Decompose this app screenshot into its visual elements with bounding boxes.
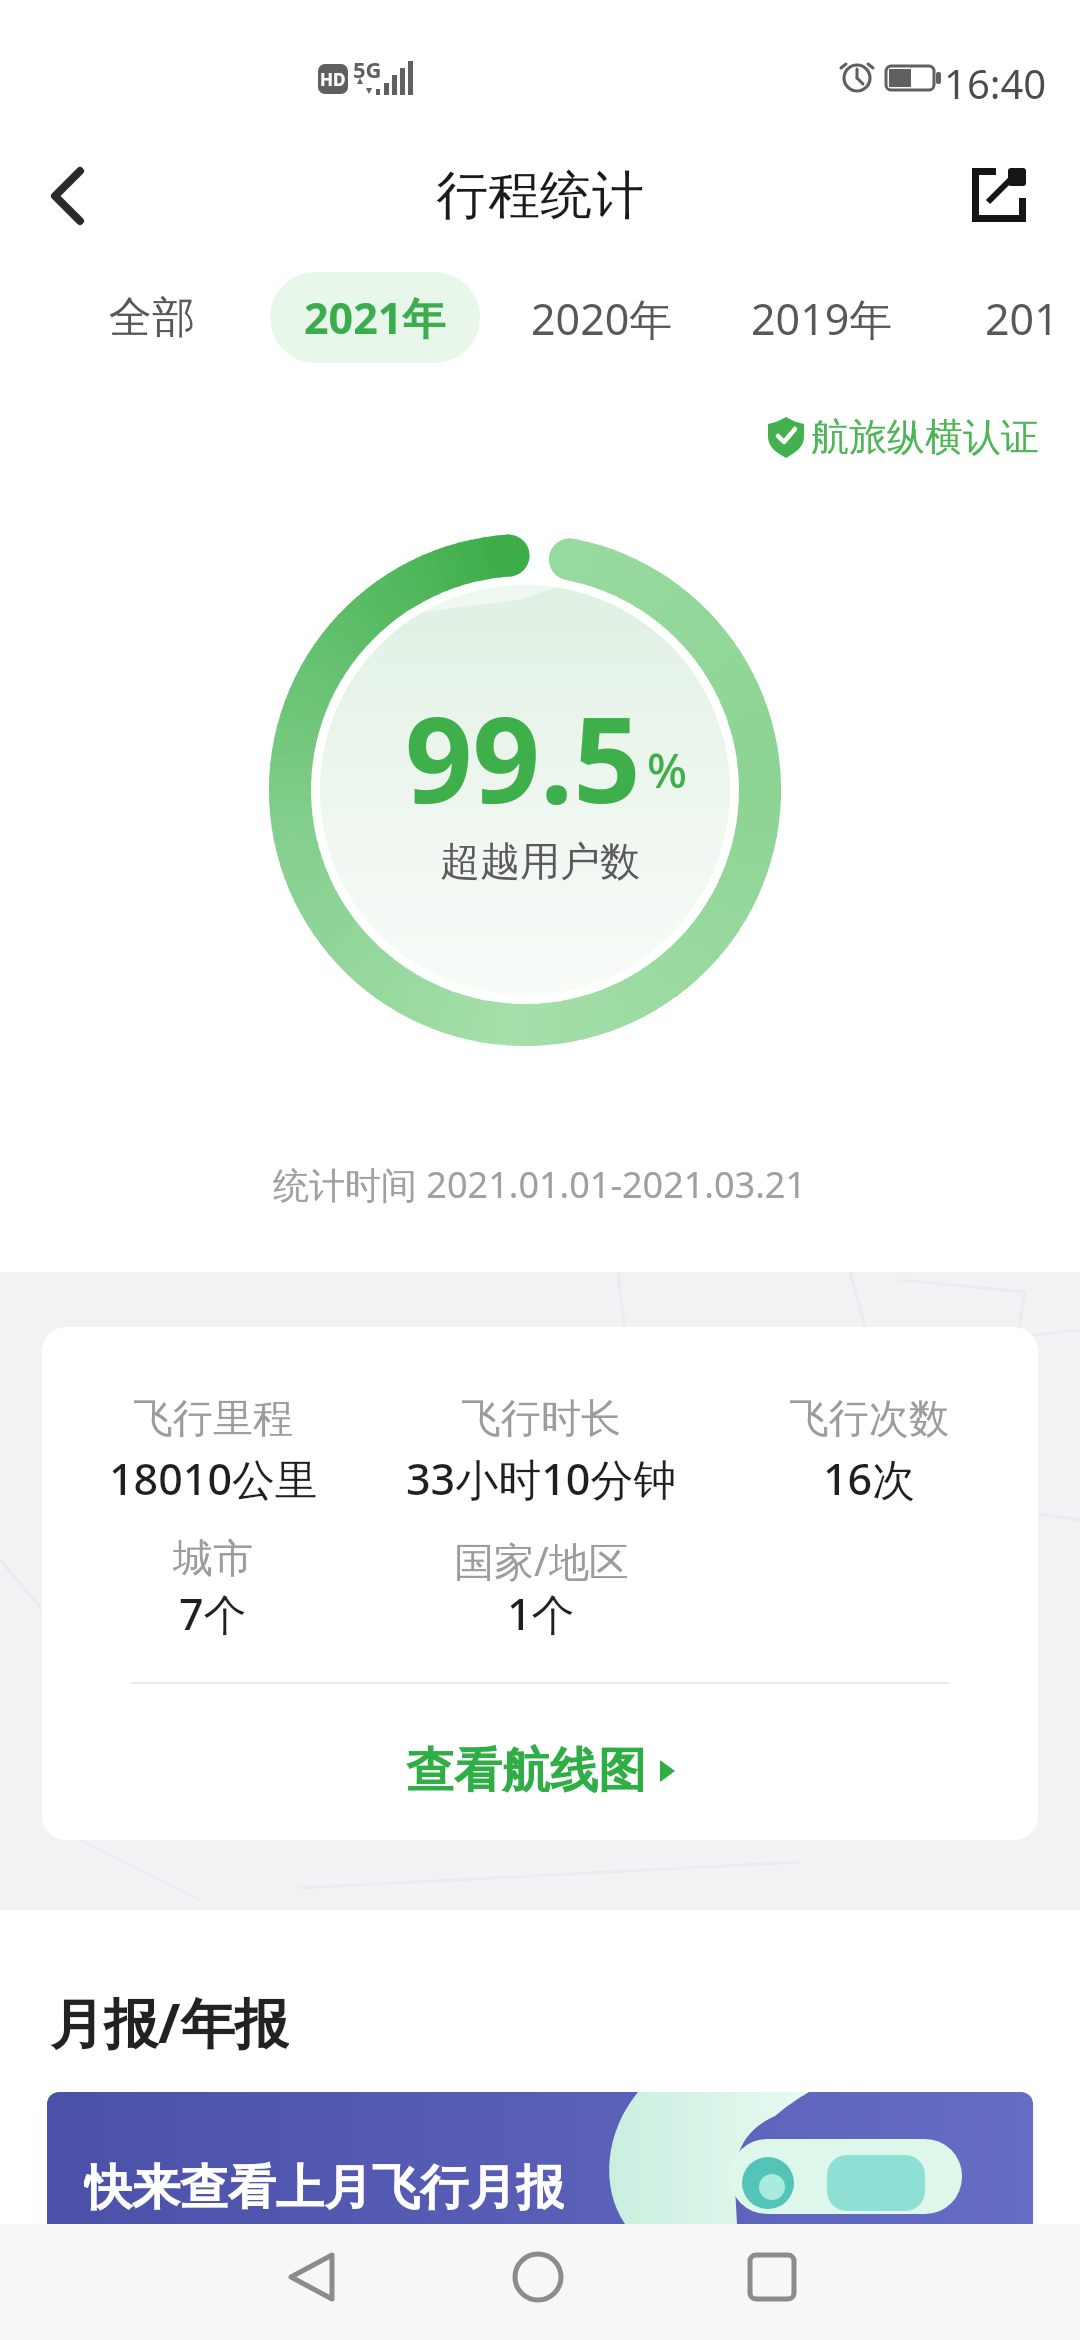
staticText: % <box>647 738 688 798</box>
button[interactable] <box>270 2237 350 2317</box>
staticText: 2020年 <box>531 289 673 348</box>
button[interactable] <box>498 2237 578 2317</box>
staticText: 行程统计 <box>436 163 644 229</box>
staticText: 18010公里 <box>109 1449 318 1505</box>
staticText: 16次 <box>823 1449 916 1505</box>
button[interactable]: 快来查看上月飞行月报 <box>47 2092 1033 2224</box>
staticText: 城市 <box>173 1533 253 1583</box>
staticText: 5G <box>353 54 382 80</box>
staticText: 全部 <box>109 291 195 345</box>
staticText: 快来查看上月飞行月报 <box>84 2158 564 2214</box>
staticText: HD <box>320 68 346 91</box>
staticText: 查看航线图 <box>406 1741 646 1801</box>
button[interactable]: 2018年 <box>985 283 1080 353</box>
button[interactable]: 2019年 <box>732 283 912 353</box>
staticText: 2019年 <box>751 289 893 348</box>
button[interactable] <box>950 150 1060 245</box>
staticText: 月报/年报 <box>50 1985 289 2051</box>
staticText: 飞行次数 <box>789 1393 949 1443</box>
staticText: 飞行里程 <box>133 1393 293 1443</box>
button[interactable]: 2021年 <box>270 272 480 363</box>
staticText: 统计时间 2021.01.01-2021.03.21 <box>273 1160 807 1209</box>
staticText: 7个 <box>179 1584 247 1640</box>
button[interactable]: 全部 <box>72 283 232 353</box>
staticText: 16:40 <box>944 56 1047 100</box>
staticText: 航旅纵横认证 <box>811 413 1039 459</box>
staticText: 2021年 <box>304 288 446 347</box>
staticText: 33小时10分钟 <box>406 1449 677 1505</box>
staticText: 99.5 <box>405 677 641 827</box>
button[interactable]: 2020年 <box>512 283 692 353</box>
button[interactable]: 航旅纵横认证 <box>810 413 1040 459</box>
staticText: 超越用户数 <box>440 836 640 886</box>
staticText: 飞行时长 <box>461 1393 621 1443</box>
staticText: 2018年 <box>985 289 1080 348</box>
button[interactable] <box>732 2237 812 2317</box>
button[interactable] <box>20 150 120 245</box>
staticText: 国家/地区 <box>454 1533 629 1583</box>
button[interactable]: 查看航线图 <box>391 1735 691 1807</box>
staticText: 1个 <box>507 1584 575 1640</box>
